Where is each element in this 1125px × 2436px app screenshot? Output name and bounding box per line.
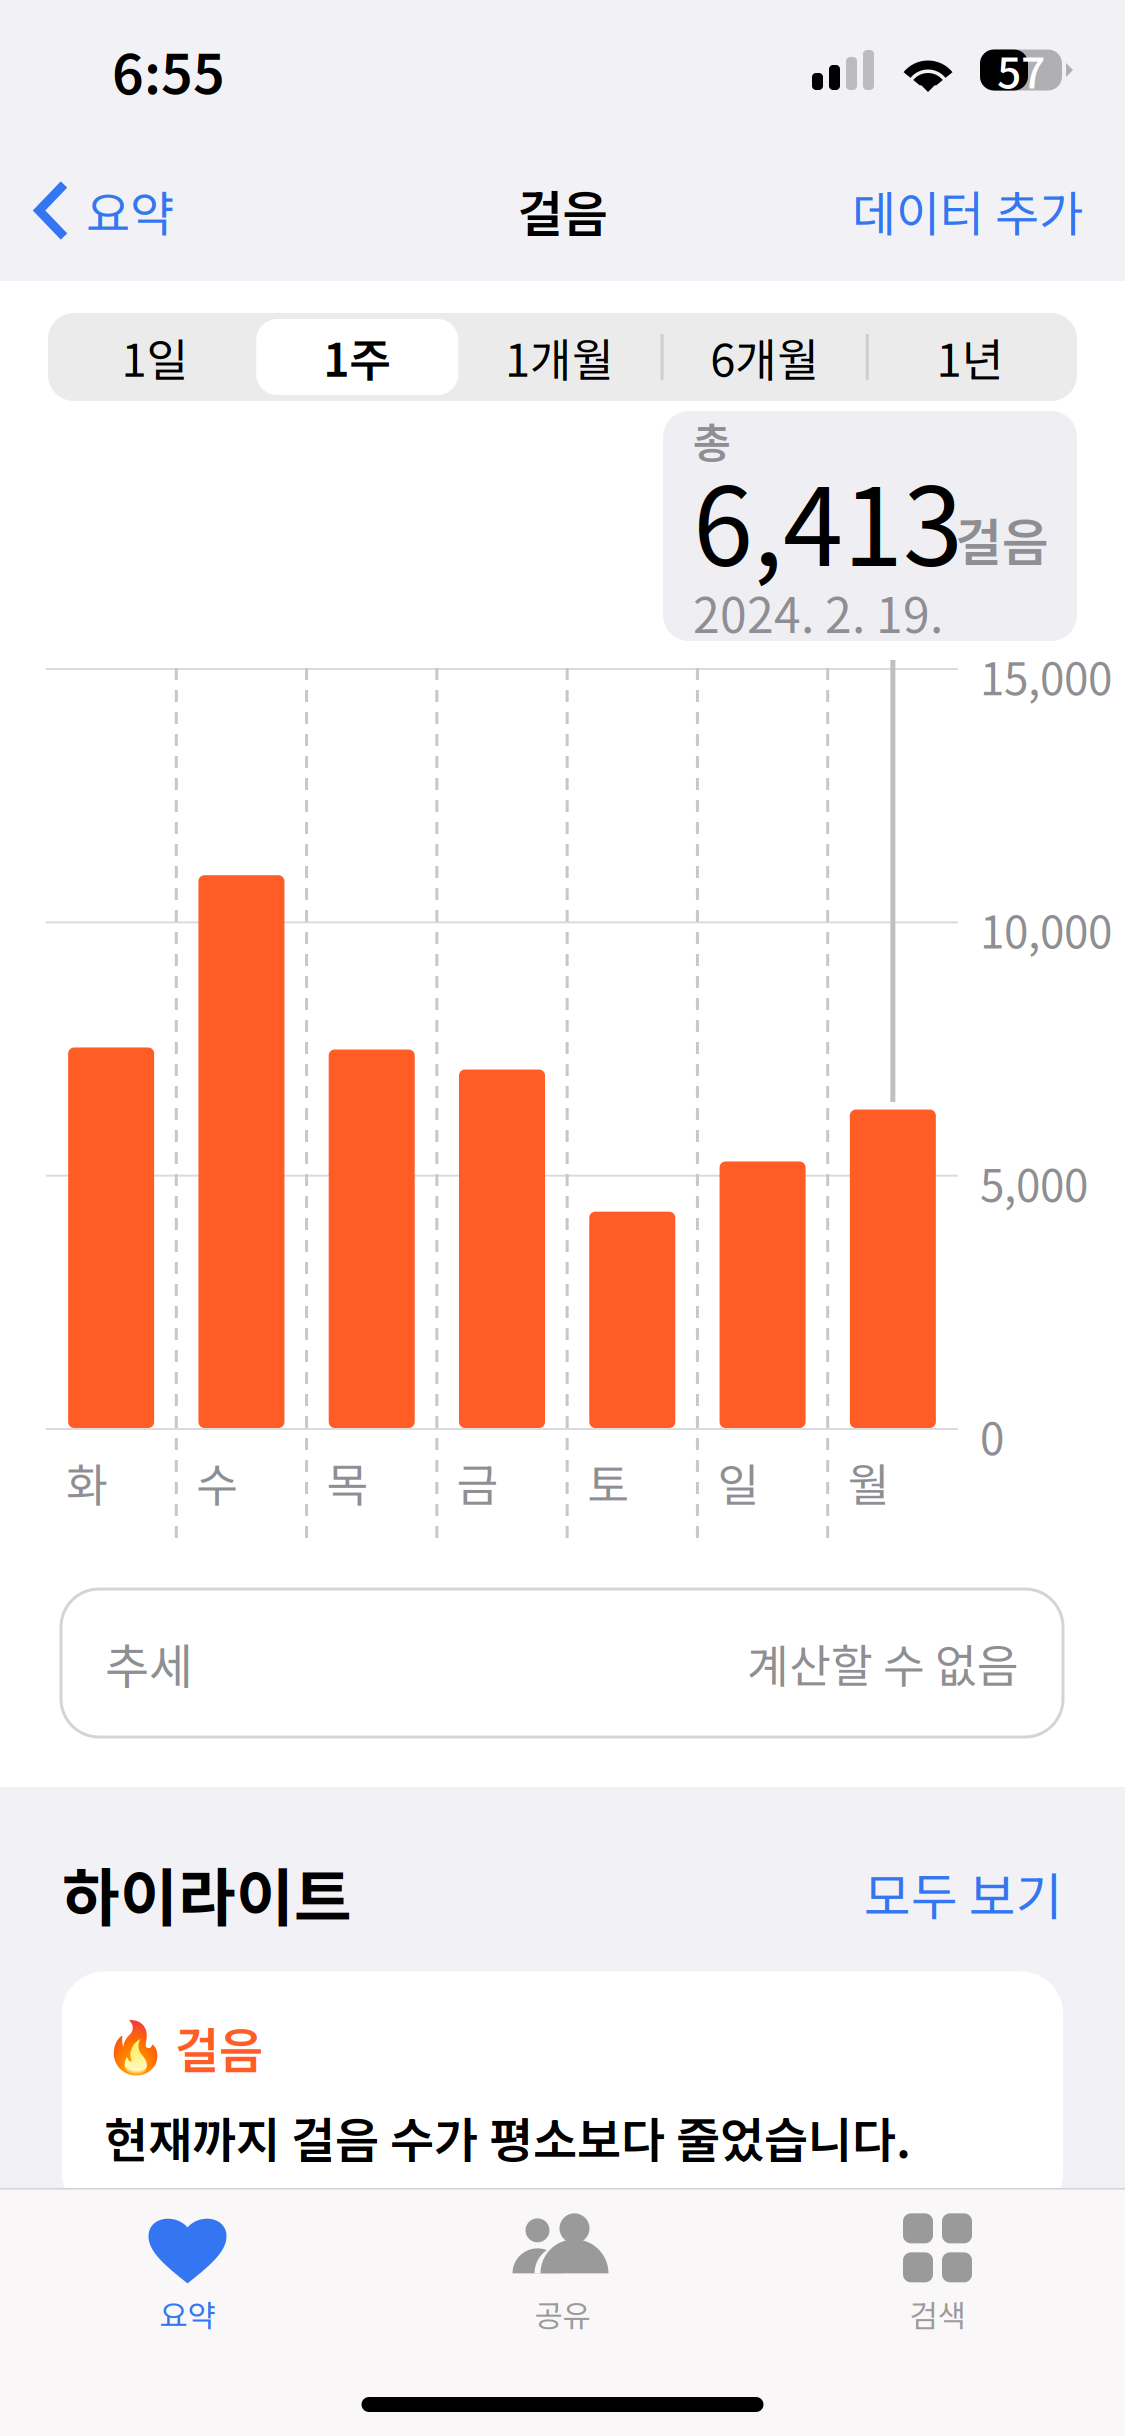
staticText: 요약 <box>159 2292 215 2336</box>
staticText: 1개월 <box>505 325 614 389</box>
button[interactable]: 모두 보기 <box>864 1857 1063 1929</box>
staticText: 총 <box>693 411 731 469</box>
staticText: 1주 <box>323 325 391 389</box>
button[interactable]: 요약 <box>0 2193 375 2336</box>
staticText: 화 <box>66 1450 108 1514</box>
button[interactable]: 1개월 <box>458 319 661 395</box>
button[interactable]: 추세 <box>61 1589 1063 1737</box>
button[interactable]: 6개월 <box>664 319 866 395</box>
staticText: 요약 <box>86 177 174 244</box>
staticText: 추세 <box>105 1629 193 1697</box>
staticText: 현재까지 걸음 수가 평소보다 줄었습니다. <box>104 2103 911 2171</box>
staticText: 수 <box>196 1450 238 1514</box>
staticText: 6:55 <box>112 31 225 109</box>
staticText: 6,413 <box>693 443 963 595</box>
staticText: 금 <box>457 1450 499 1514</box>
staticText: 2024. 2. 19. <box>693 578 943 646</box>
staticText: 검색 <box>909 2292 965 2336</box>
staticText: 목 <box>327 1450 369 1514</box>
staticText: 1년 <box>936 325 1003 389</box>
staticText: 하이라이트 <box>62 1849 352 1937</box>
staticText: 일 <box>717 1450 759 1514</box>
staticText: 5,000 <box>980 1152 1088 1214</box>
staticText: 1일 <box>122 325 189 389</box>
staticText: 6개월 <box>710 325 819 389</box>
button[interactable]: 1주 <box>256 319 458 395</box>
staticText: 모두 보기 <box>864 1857 1063 1929</box>
button[interactable]: 1년 <box>869 319 1071 395</box>
button[interactable]: 데이터 추가 <box>852 161 1125 260</box>
staticText: 토 <box>587 1450 629 1514</box>
staticText: 57 <box>997 40 1045 100</box>
staticText: 걸음 <box>175 2013 263 2081</box>
button[interactable]: 공유 <box>375 2193 750 2336</box>
staticText: 🔥 <box>104 2018 167 2076</box>
staticText: 공유 <box>534 2292 590 2336</box>
button[interactable]: 1일 <box>54 319 256 395</box>
staticText: 10,000 <box>980 898 1112 960</box>
staticText: 0 <box>980 1405 1004 1467</box>
button[interactable]: 요약 <box>0 161 174 260</box>
staticText: 걸음 <box>955 503 1049 575</box>
staticText: 15,000 <box>980 645 1112 707</box>
staticText: 월 <box>848 1450 890 1514</box>
staticText: 계산할 수 없음 <box>747 1631 1019 1695</box>
button[interactable]: 검색 <box>750 2193 1125 2336</box>
staticText: 걸음 <box>517 176 607 245</box>
staticText: 데이터 추가 <box>852 177 1083 244</box>
